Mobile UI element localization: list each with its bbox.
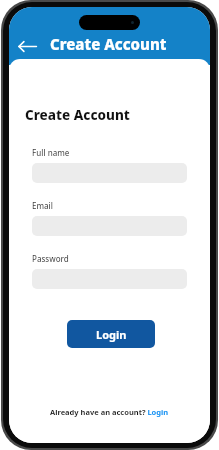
staticText: Email [32, 200, 53, 211]
staticText: Login [96, 327, 127, 342]
button[interactable]: Back [14, 33, 40, 59]
staticText: Create Account [50, 34, 167, 54]
staticText: Create Account [25, 106, 130, 124]
staticText: Password [32, 253, 69, 264]
staticText: Already have an account? Login [50, 407, 169, 417]
staticText: Full name [32, 147, 70, 158]
button[interactable]: Login [67, 320, 155, 348]
button[interactable]: Already have an account? Login [9, 407, 210, 443]
